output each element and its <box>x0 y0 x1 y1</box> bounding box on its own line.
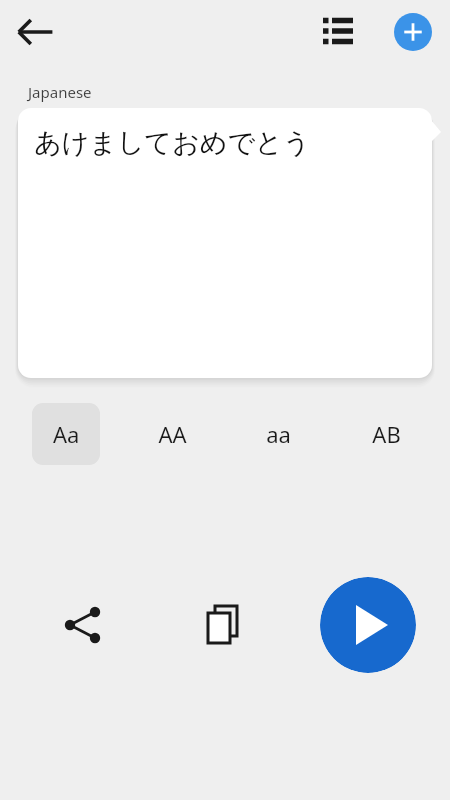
button[interactable]: Share <box>60 600 110 650</box>
button[interactable]: AA <box>138 403 206 465</box>
button[interactable]: Play <box>320 577 416 673</box>
staticText: AB <box>372 419 401 449</box>
staticText: aa <box>266 419 291 449</box>
button[interactable]: Add <box>394 13 432 51</box>
button[interactable]: Aa <box>32 403 100 465</box>
button[interactable]: AB <box>352 403 420 465</box>
button[interactable]: aa <box>244 403 312 465</box>
staticText: Aa <box>53 419 80 449</box>
button[interactable]: Copy <box>202 600 250 650</box>
button[interactable]: List <box>320 12 360 52</box>
staticText: AA <box>158 419 187 449</box>
staticText: あけましておめでとう <box>34 126 311 160</box>
button[interactable]: Back <box>14 10 62 54</box>
staticText: Japanese <box>28 82 92 102</box>
